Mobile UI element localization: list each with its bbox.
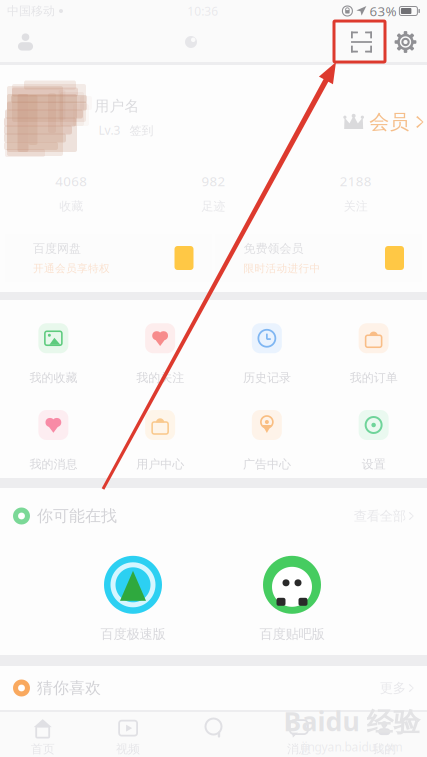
staticText: 收藏 [59, 199, 83, 214]
button[interactable]: 查看全部 [346, 502, 414, 530]
staticText: 设置 [362, 457, 386, 472]
staticText: 历史记录 [243, 370, 291, 385]
staticText: 百度贴吧版 [259, 626, 324, 642]
staticText: Lv.3 签到 [98, 122, 153, 138]
staticText: 10:36 [187, 3, 218, 19]
staticText: Baidu 经验 [283, 703, 420, 739]
staticText: 百度极速版 [100, 626, 165, 642]
button[interactable]: 消息 [256, 712, 342, 757]
button[interactable]: 我的订单 [320, 302, 427, 389]
button[interactable]: Profile [5, 22, 46, 62]
staticText: 中国移动 [7, 4, 55, 18]
staticText: 免费领会员 [243, 241, 303, 256]
button[interactable]: 更多 [372, 674, 414, 702]
button[interactable]: 我的 [342, 712, 427, 757]
button[interactable]: 广告中心 [213, 389, 320, 476]
staticText: 我的消息 [29, 457, 77, 472]
staticText: 消息 [287, 742, 311, 756]
staticText: 关注 [344, 199, 368, 214]
staticText: 视频 [116, 742, 140, 756]
button[interactable]: 免费领会员 [215, 234, 422, 282]
staticText: 63% [369, 2, 396, 20]
staticText: 更多 [380, 680, 406, 696]
staticText: 我的 [372, 742, 396, 756]
button[interactable]: Scan QR code [336, 21, 387, 62]
button[interactable]: 用户中心 [107, 389, 214, 476]
staticText: 百度网盘 [33, 241, 81, 256]
staticText: 我的订单 [350, 370, 398, 385]
staticText: 你可能在找 [37, 506, 117, 526]
staticText: 广告中心 [243, 457, 291, 472]
button[interactable]: 视频 [85, 712, 171, 757]
button[interactable]: 我的关注 [107, 302, 214, 389]
staticText: 首页 [31, 742, 55, 756]
staticText: 我的收藏 [29, 370, 77, 385]
staticText: 982 [201, 172, 225, 190]
button[interactable]: 百度极速版 [100, 556, 165, 642]
staticText: 用户中心 [136, 457, 184, 472]
button[interactable]: 我的消息 [0, 389, 107, 476]
staticText: 会员 [369, 110, 409, 134]
staticText: 足迹 [201, 199, 225, 214]
button[interactable] [171, 712, 256, 757]
staticText: 2188 [340, 172, 372, 190]
staticText: 我的关注 [136, 370, 184, 385]
button[interactable]: 我的收藏 [0, 302, 107, 389]
button[interactable]: 百度贴吧版 [259, 556, 324, 642]
staticText: 用户名 [94, 97, 139, 115]
staticText: 开通会员享特权 [33, 262, 110, 275]
button[interactable]: 982 [142, 166, 285, 220]
button[interactable]: Settings [387, 22, 427, 62]
button[interactable]: 百度网盘 [5, 234, 211, 282]
button[interactable]: 首页 [0, 712, 85, 757]
staticText: 限时活动进行中 [243, 262, 320, 275]
staticText: 猜你喜欢 [37, 678, 101, 698]
button[interactable]: 设置 [320, 389, 427, 476]
staticText: jingyan.baidu.com [301, 739, 402, 755]
staticText: 4068 [55, 172, 87, 190]
button[interactable]: 历史记录 [213, 302, 320, 389]
staticText: 查看全部 [354, 508, 406, 524]
button[interactable]: 会员 [338, 101, 427, 143]
